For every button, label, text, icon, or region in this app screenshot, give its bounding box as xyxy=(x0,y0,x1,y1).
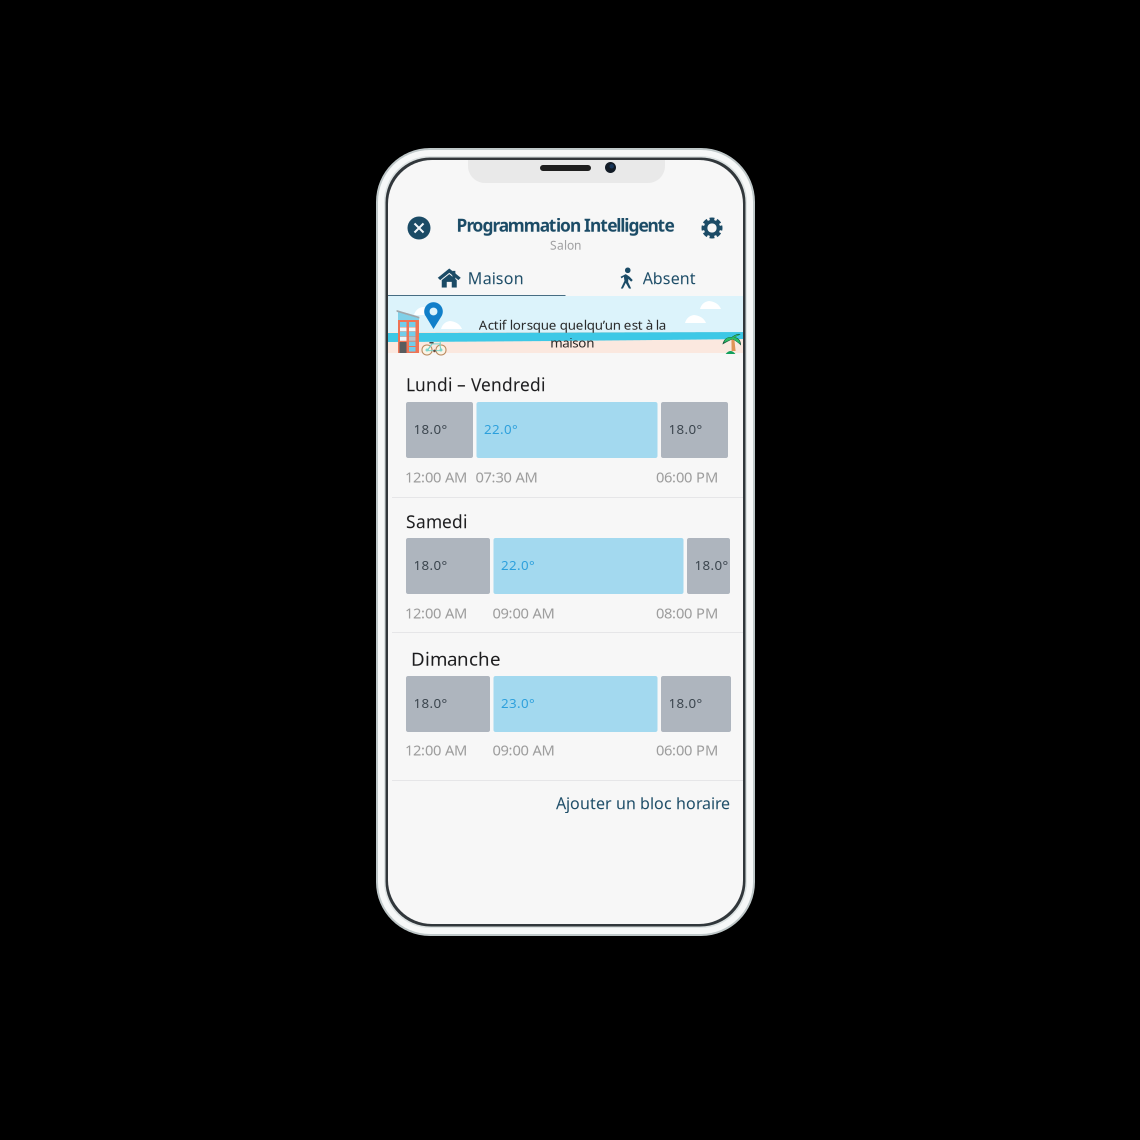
staticText: 06:00 PM xyxy=(656,740,718,759)
staticText: 08:00 PM xyxy=(656,603,718,622)
button[interactable]: Fermer xyxy=(398,207,440,249)
staticText: Absent xyxy=(643,267,696,289)
staticText: 07:30 AM xyxy=(475,467,537,486)
staticText: 18.0° xyxy=(413,556,447,574)
staticText: 12:00 AM xyxy=(405,467,467,486)
staticText: 12:00 AM xyxy=(405,740,467,759)
staticText: Maison xyxy=(468,267,524,289)
staticText: Lundi – Vendredi xyxy=(406,373,545,396)
staticText: 18.0° xyxy=(668,420,702,438)
staticText: Salon xyxy=(550,237,581,253)
staticText: Samedi xyxy=(406,510,467,533)
staticText: 18.0° xyxy=(413,694,447,712)
staticText: 22.0° xyxy=(484,420,518,438)
staticText: 12:00 AM xyxy=(405,603,467,622)
staticText: 09:00 AM xyxy=(492,740,554,759)
staticText: 23.0° xyxy=(501,694,535,712)
staticText: 18.0° xyxy=(694,556,728,574)
staticText: 06:00 PM xyxy=(656,467,718,486)
staticText: 22.0° xyxy=(501,556,535,574)
staticText: 18.0° xyxy=(413,420,447,438)
button[interactable]: Réglages xyxy=(691,207,733,249)
staticText: Dimanche xyxy=(411,646,501,671)
button[interactable]: Absent xyxy=(565,261,743,295)
staticText: Programmation Intelligente xyxy=(456,213,675,236)
button[interactable]: Maison xyxy=(388,261,565,295)
staticText: Ajouter un bloc horaire xyxy=(556,792,730,814)
staticText: 18.0° xyxy=(668,694,702,712)
staticText: 09:00 AM xyxy=(492,603,554,622)
button[interactable]: Ajouter un bloc horaire xyxy=(388,781,743,825)
staticText: Actif lorsque quelqu’un est à la maison xyxy=(478,316,665,351)
